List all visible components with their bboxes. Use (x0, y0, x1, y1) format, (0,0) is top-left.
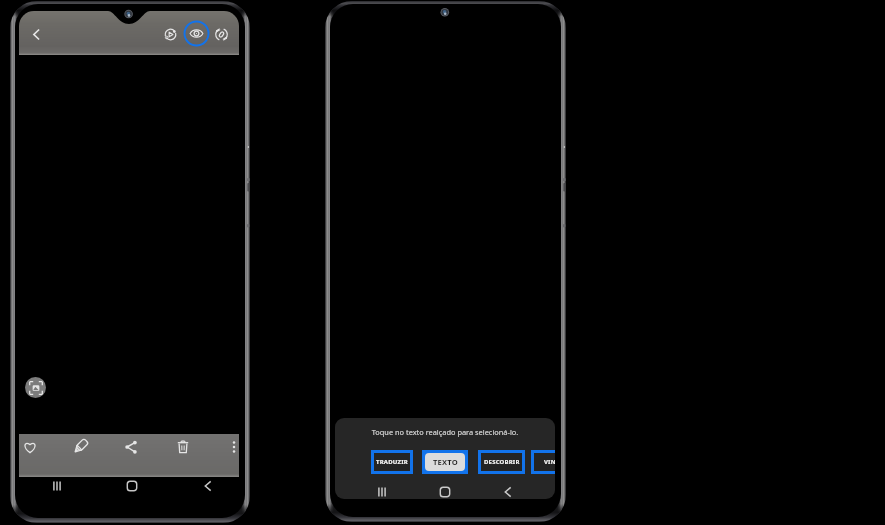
button[interactable]: Edit (69, 434, 93, 458)
staticText: VINHO (544, 458, 555, 466)
button[interactable]: TEXTO (422, 450, 468, 474)
button[interactable]: Home (437, 484, 453, 500)
button[interactable]: Bixby Vision (184, 21, 209, 46)
button[interactable]: Favourite (18, 435, 42, 459)
button[interactable]: Rotate (209, 22, 234, 47)
button[interactable]: TRADUZIR (371, 450, 413, 474)
button[interactable]: Share (119, 435, 143, 459)
staticText: TRADUZIR (376, 458, 408, 466)
button[interactable]: Scan (25, 377, 46, 398)
button[interactable]: Recents (49, 478, 65, 494)
staticText: DESCOBRIR (484, 458, 520, 466)
button[interactable]: Back (24, 22, 49, 47)
button[interactable]: More options (222, 435, 246, 459)
button[interactable]: Delete (171, 435, 195, 459)
staticText: Toque no texto realçado para selecioná-l… (335, 427, 555, 437)
button[interactable]: Back (500, 484, 516, 500)
button[interactable]: Recents (374, 484, 390, 500)
button[interactable]: Back (200, 478, 216, 494)
staticText: TEXTO (433, 457, 458, 467)
button[interactable]: Home (124, 478, 140, 494)
button[interactable]: Motion photo (158, 22, 183, 47)
button[interactable]: DESCOBRIR (478, 450, 525, 474)
button[interactable]: VINHO (531, 450, 555, 474)
